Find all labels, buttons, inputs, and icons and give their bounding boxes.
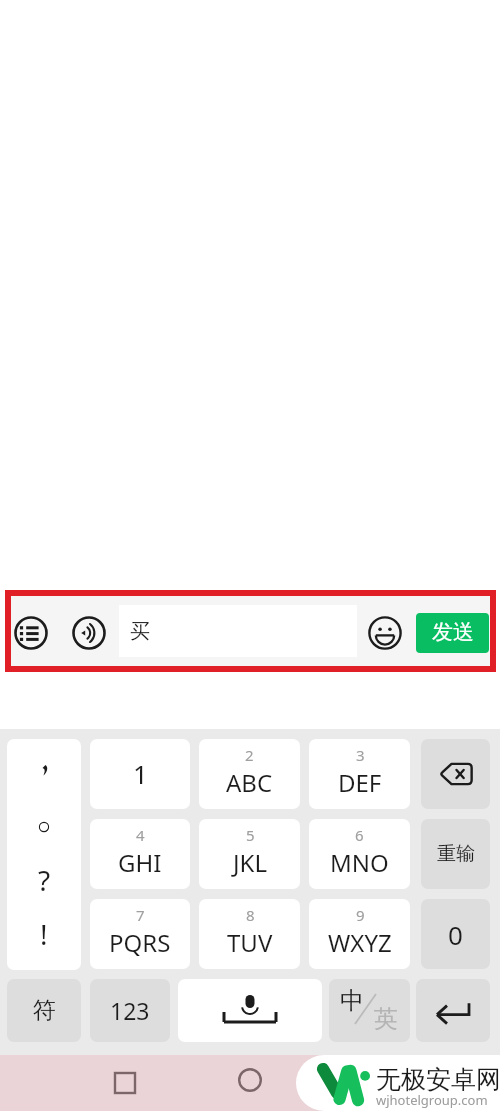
button[interactable]: 符 — [7, 979, 81, 1042]
button[interactable]: 6 — [309, 819, 410, 889]
button[interactable]: Backspace — [421, 739, 490, 809]
staticText: 符 — [33, 996, 56, 1025]
button[interactable]: ? — [7, 739, 81, 970]
staticText: 买 — [130, 619, 150, 644]
staticText: 2 — [245, 745, 254, 765]
staticText: 无极安卓网 — [376, 1064, 500, 1095]
staticText: 6 — [355, 825, 364, 845]
button[interactable]: 3 — [309, 739, 410, 809]
button[interactable]: Enter — [416, 979, 490, 1042]
button[interactable]: Home — [230, 1060, 270, 1100]
button[interactable]: 5 — [199, 819, 300, 889]
button[interactable]: 中 — [329, 979, 410, 1042]
button[interactable]: 买 — [119, 605, 357, 657]
staticText: ABC — [226, 766, 273, 799]
staticText: 123 — [110, 995, 150, 1026]
staticText: ? — [38, 861, 51, 899]
button[interactable]: Space — [178, 979, 322, 1042]
staticText: GHI — [118, 846, 162, 879]
staticText: 0 — [448, 917, 463, 952]
button[interactable]: 9 — [309, 899, 410, 969]
staticText: 重输 — [437, 842, 475, 866]
button[interactable]: 7 — [90, 899, 190, 969]
staticText: ! — [40, 915, 48, 953]
button[interactable]: 1 — [90, 739, 190, 809]
button[interactable]: 重输 — [421, 819, 490, 889]
button[interactable]: 123 — [90, 979, 170, 1042]
staticText: 9 — [356, 905, 365, 925]
button[interactable]: 2 — [199, 739, 300, 809]
staticText: PQRS — [109, 926, 171, 959]
button[interactable]: Recents — [105, 1063, 145, 1103]
staticText: TUV — [227, 926, 273, 959]
button[interactable]: Keyboard layout — [14, 616, 48, 650]
staticText: 8 — [246, 905, 255, 925]
staticText: 英 — [374, 1004, 398, 1034]
staticText: 5 — [246, 825, 255, 845]
button[interactable]: Emoji — [368, 616, 402, 650]
staticText: 3 — [356, 745, 365, 765]
staticText: 中 — [340, 986, 364, 1016]
staticText: 发送 — [432, 619, 474, 645]
button[interactable]: Voice input — [72, 616, 106, 650]
staticText: WXYZ — [328, 926, 392, 959]
staticText: 4 — [136, 825, 145, 845]
staticText: wjhotelgroup.com — [376, 1091, 488, 1109]
button[interactable]: 8 — [199, 899, 300, 969]
staticText: 1 — [133, 756, 148, 791]
staticText: DEF — [338, 766, 382, 799]
staticText: 7 — [136, 905, 145, 925]
staticText: MNO — [330, 846, 389, 879]
button[interactable]: 发送 — [416, 613, 489, 653]
button[interactable]: 4 — [90, 819, 190, 889]
staticText: JKL — [233, 846, 267, 879]
button[interactable]: 0 — [421, 899, 490, 969]
